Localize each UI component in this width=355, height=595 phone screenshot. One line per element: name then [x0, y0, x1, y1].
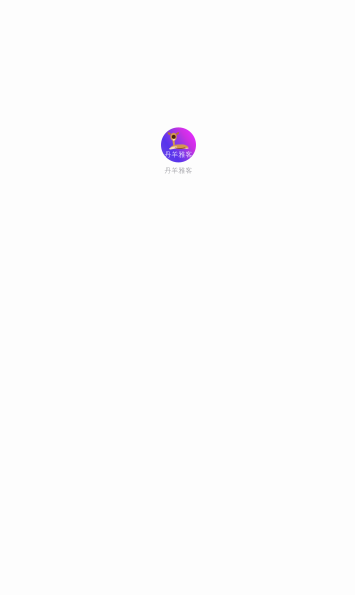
staticText: 丹羊雅客	[164, 150, 192, 159]
staticText: 丹羊雅客	[164, 166, 192, 175]
